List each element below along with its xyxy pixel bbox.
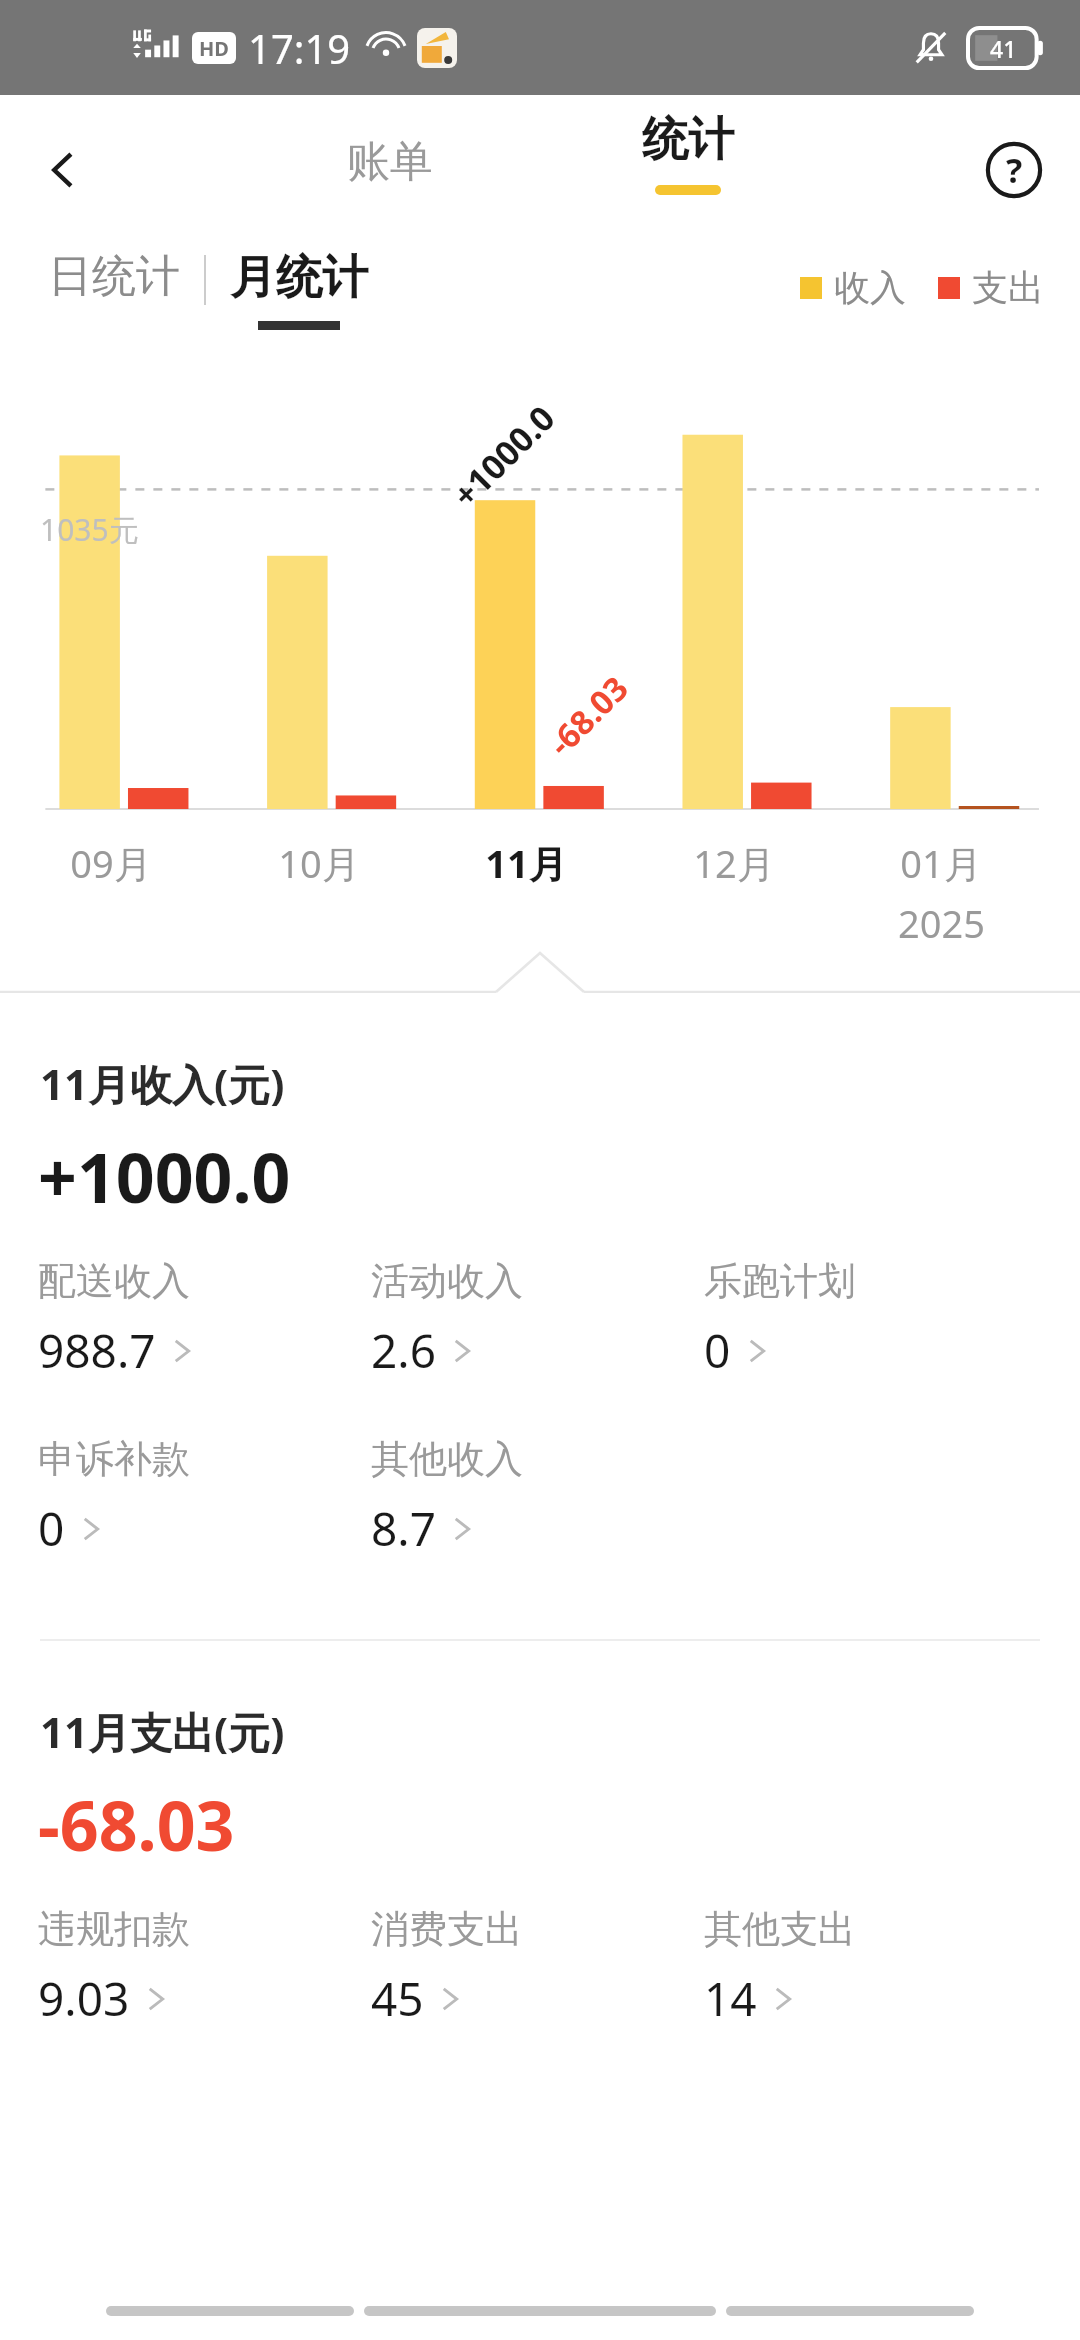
button[interactable]: 统计: [592, 99, 784, 225]
staticText: 2.6: [371, 1319, 436, 1382]
staticText: 1035元: [40, 509, 139, 550]
staticText: 账单: [347, 135, 433, 189]
button[interactable]: 其他支出: [704, 1905, 1004, 2030]
button[interactable]: 09月: [26, 837, 196, 889]
button[interactable]: Help: [966, 122, 1062, 218]
staticText: ?: [1006, 147, 1023, 193]
button[interactable]: 01月: [856, 837, 1026, 949]
staticText: 月统计: [230, 249, 368, 307]
staticText: 活动收入: [371, 1257, 523, 1305]
staticText: HD: [199, 35, 229, 62]
button[interactable]: 11月: [441, 837, 611, 889]
staticText: -68.03: [538, 666, 638, 765]
staticText: 12月: [693, 837, 775, 889]
staticText: 09月: [70, 837, 152, 889]
staticText: 11月支出(元): [40, 1703, 285, 1760]
staticText: 41: [990, 33, 1017, 64]
staticText: 17:19: [248, 21, 351, 75]
staticText: 收入: [834, 265, 906, 310]
staticText: 45: [371, 1967, 424, 2030]
button[interactable]: 月统计: [230, 249, 368, 330]
staticText: 申诉补款: [38, 1435, 190, 1483]
staticText: 9.03: [38, 1967, 130, 2030]
button[interactable]: 10月: [234, 837, 404, 889]
staticText: 11月收入(元): [40, 1055, 285, 1112]
staticText: 0: [704, 1319, 731, 1382]
staticText: +1000.0: [38, 1130, 291, 1223]
staticText: 其他收入: [371, 1435, 523, 1483]
staticText: 违规扣款: [38, 1905, 190, 1953]
staticText: 10月: [278, 837, 360, 889]
staticText: -68.03: [38, 1778, 235, 1871]
staticText: 11月: [485, 837, 567, 889]
button[interactable]: 申诉补款: [38, 1435, 338, 1560]
button[interactable]: 配送收入: [38, 1257, 338, 1382]
button[interactable]: Back: [18, 125, 108, 215]
staticText: 8.7: [371, 1497, 436, 1560]
button[interactable]: 12月: [649, 837, 819, 889]
staticText: 14: [704, 1967, 757, 2030]
button[interactable]: 乐跑计划: [704, 1257, 1004, 1382]
staticText: 0: [38, 1497, 65, 1560]
staticText: 支出: [972, 265, 1044, 310]
staticText: 配送收入: [38, 1257, 190, 1305]
button[interactable]: 其他收入: [371, 1435, 671, 1560]
button[interactable]: 活动收入: [371, 1257, 671, 1382]
button[interactable]: 日统计: [48, 249, 180, 359]
staticText: 其他支出: [704, 1905, 856, 1953]
staticText: 2025: [898, 897, 985, 949]
staticText: 乐跑计划: [704, 1257, 856, 1305]
button[interactable]: 违规扣款: [38, 1905, 338, 2030]
button[interactable]: 账单: [300, 114, 480, 210]
staticText: 988.7: [38, 1319, 156, 1382]
staticText: 消费支出: [371, 1905, 523, 1953]
staticText: 日统计: [48, 249, 180, 304]
button[interactable]: 消费支出: [371, 1905, 671, 2030]
staticText: 01月: [900, 837, 982, 889]
staticText: +1000.0: [442, 395, 565, 517]
staticText: 统计: [642, 111, 734, 169]
